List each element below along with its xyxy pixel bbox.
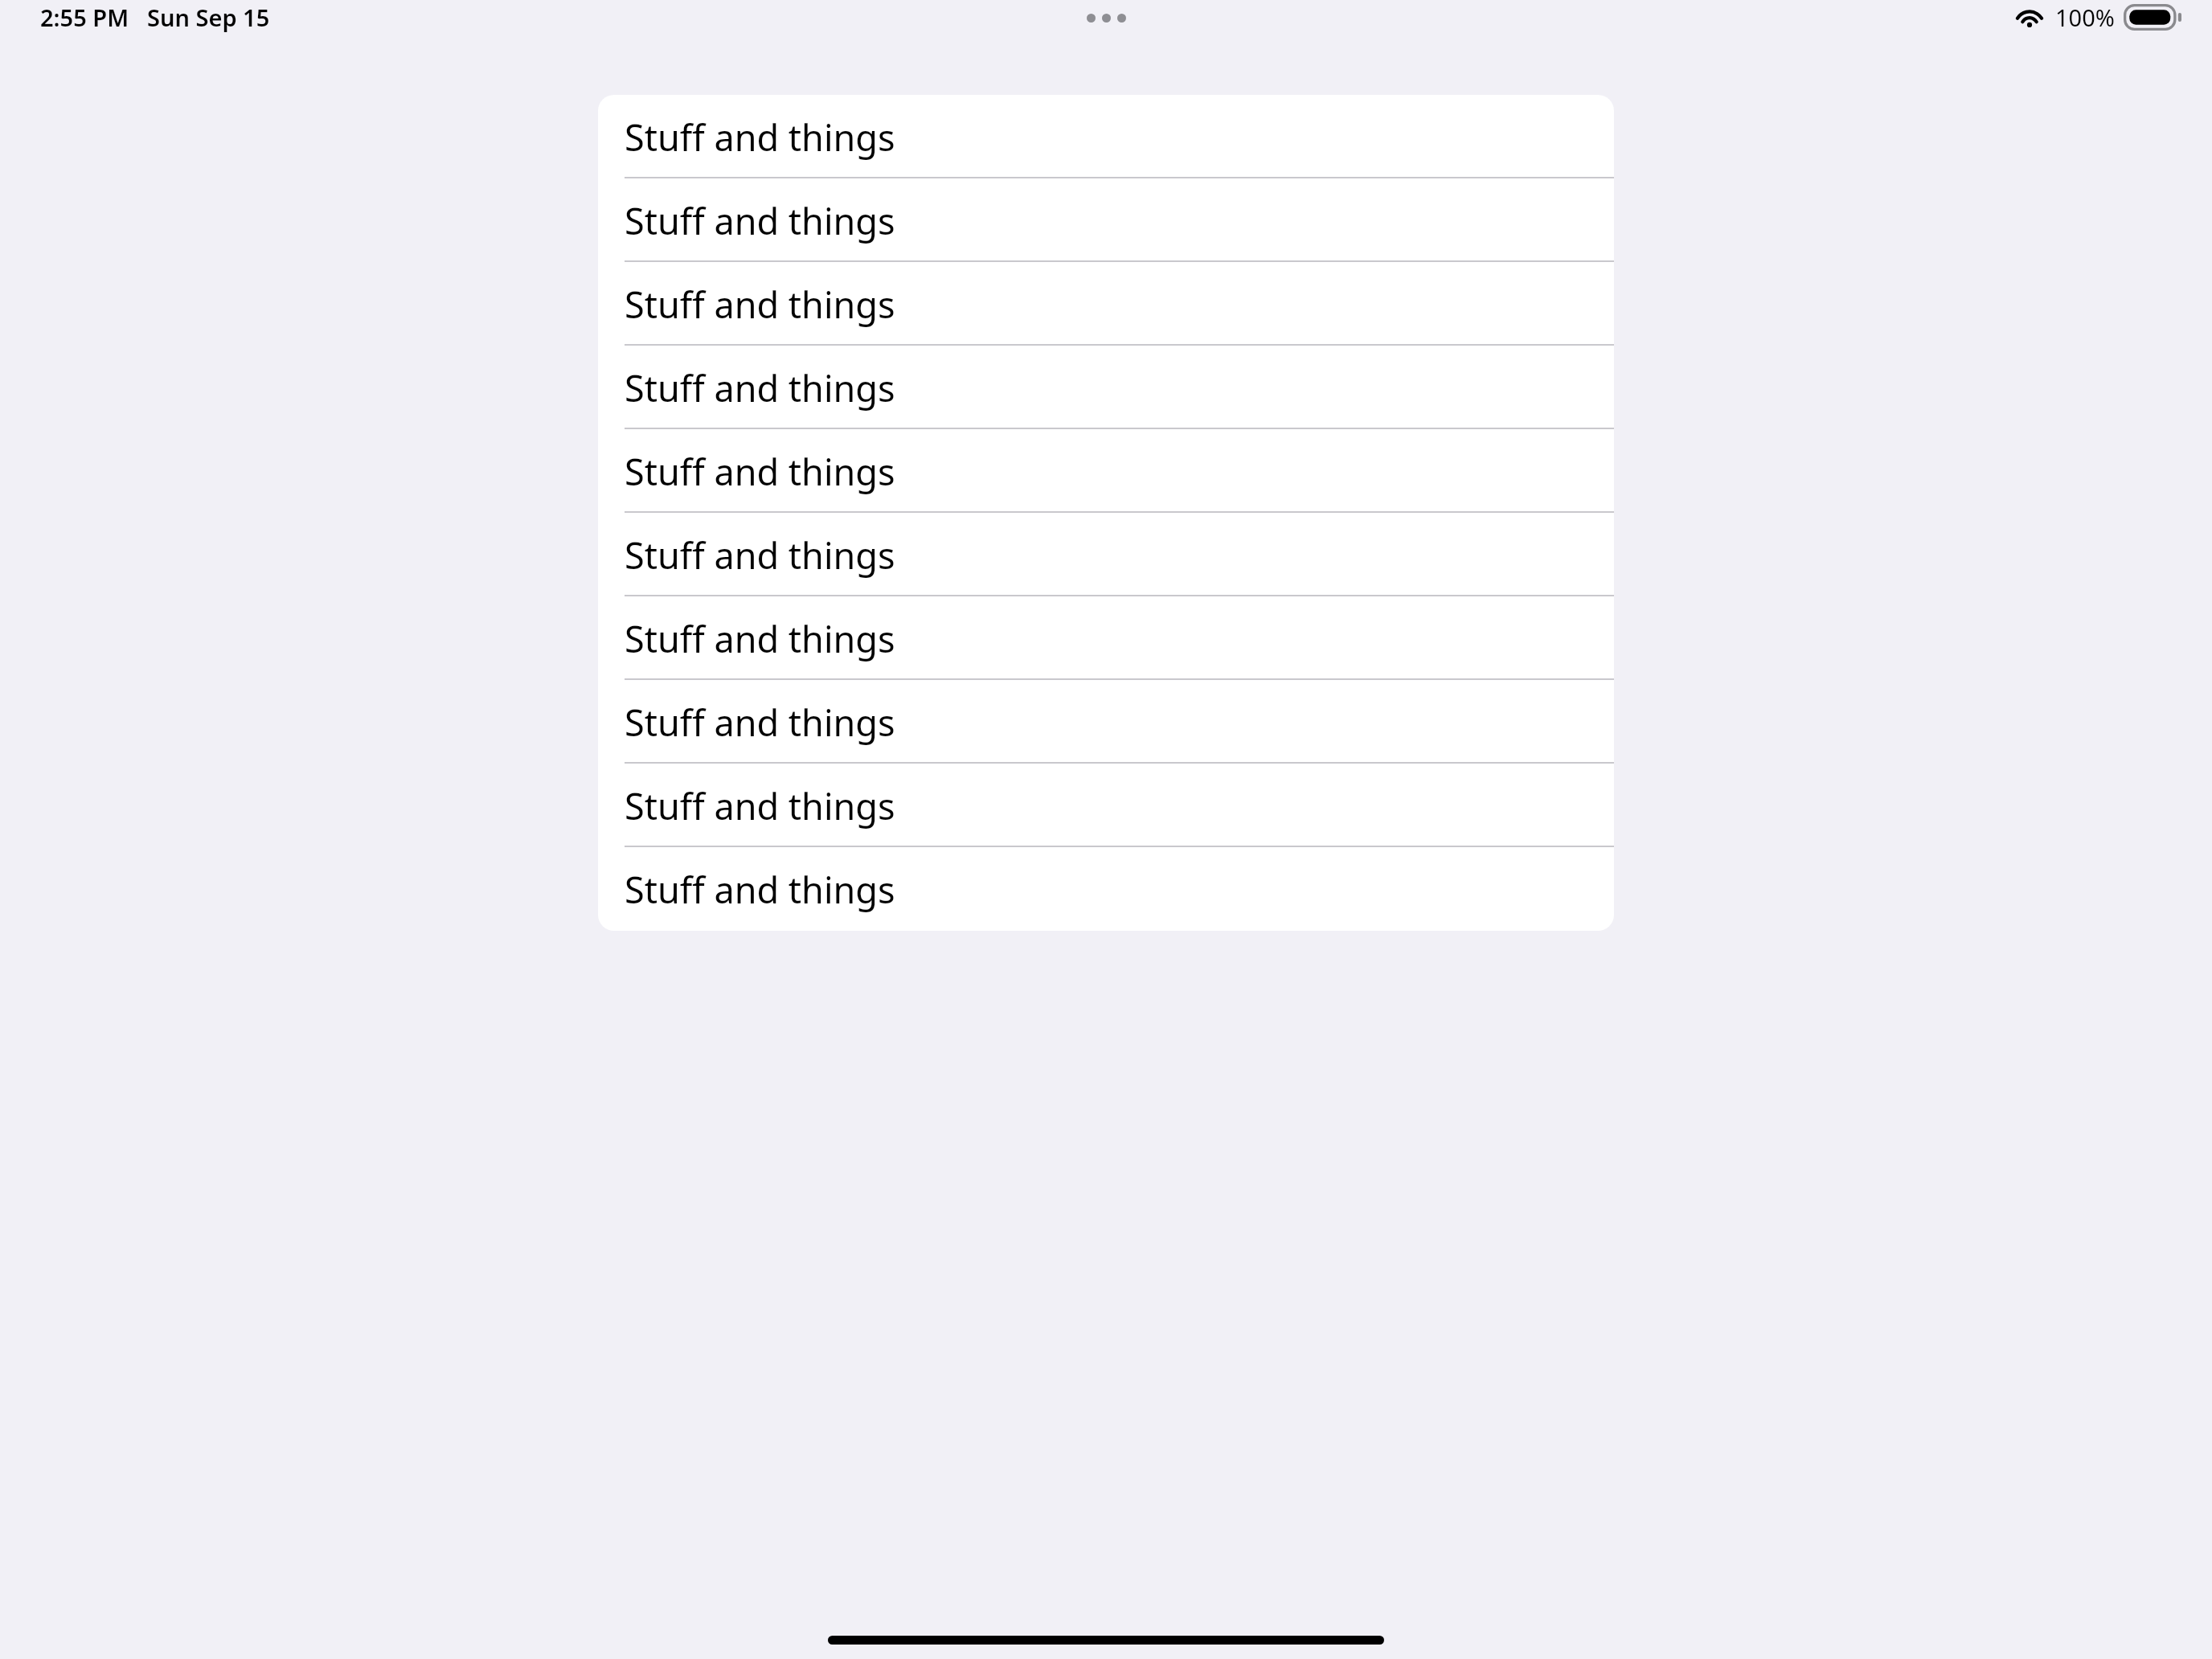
button[interactable]: Stuff and things — [598, 429, 1614, 513]
button[interactable]: Stuff and things — [598, 262, 1614, 346]
other: Wi-Fi — [2014, 6, 2045, 28]
staticText: Sun Sep 15 — [147, 2, 270, 33]
staticText: Stuff and things — [625, 698, 895, 747]
staticText: 2:55 PM — [40, 2, 129, 33]
other: Battery full — [2124, 4, 2181, 31]
staticText: Stuff and things — [625, 196, 895, 245]
button[interactable]: Stuff and things — [598, 764, 1614, 847]
staticText: Stuff and things — [625, 113, 895, 162]
staticText: Stuff and things — [625, 530, 895, 580]
button[interactable]: Stuff and things — [598, 346, 1614, 429]
button[interactable]: Stuff and things — [598, 596, 1614, 680]
staticText: Stuff and things — [625, 781, 895, 830]
button[interactable]: Stuff and things — [598, 178, 1614, 262]
button[interactable]: Multitasking controls — [1087, 14, 1126, 23]
staticText: Stuff and things — [625, 447, 895, 496]
button[interactable]: Stuff and things — [598, 680, 1614, 764]
staticText: Stuff and things — [625, 865, 895, 914]
staticText: 100% — [2055, 2, 2115, 33]
button[interactable]: Stuff and things — [598, 847, 1614, 931]
staticText: Stuff and things — [625, 363, 895, 412]
staticText: Stuff and things — [625, 614, 895, 663]
button[interactable]: Stuff and things — [598, 95, 1614, 178]
staticText: Stuff and things — [625, 280, 895, 329]
button[interactable]: Stuff and things — [598, 513, 1614, 596]
